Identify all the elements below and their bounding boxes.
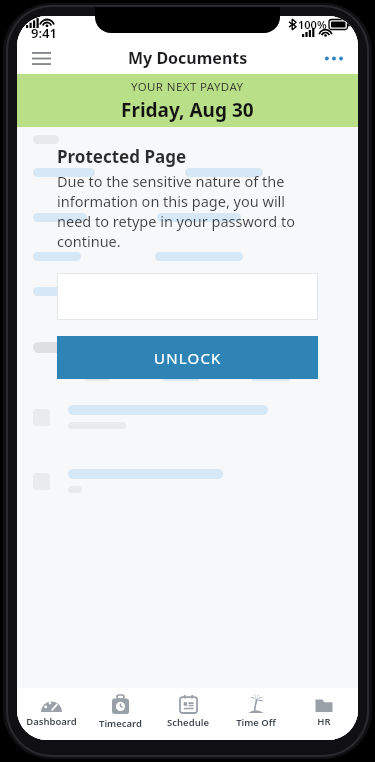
- staticText: Timecard: [99, 717, 142, 730]
- button[interactable]: UNLOCK: [57, 336, 318, 379]
- staticText: Dashboard: [26, 715, 77, 728]
- staticText: Protected Page: [57, 145, 187, 168]
- staticText: HR: [317, 715, 331, 728]
- staticText: Schedule: [167, 716, 209, 729]
- staticText: My Documents: [128, 47, 248, 69]
- staticText: Due to the sensitive nature of the infor…: [57, 171, 318, 251]
- button[interactable]: More options: [316, 42, 352, 74]
- button[interactable]: Menu: [23, 42, 59, 74]
- staticText: Time Off: [236, 716, 276, 729]
- staticText: 100%: [298, 17, 327, 32]
- staticText: Friday, Aug 30: [121, 97, 254, 123]
- button[interactable]: Dashboard: [17, 688, 86, 736]
- button[interactable]: Time Off: [222, 688, 290, 736]
- button[interactable]: Schedule: [154, 688, 222, 736]
- button[interactable]: Password field: [57, 273, 318, 320]
- staticText: YOUR NEXT PAYDAY: [131, 79, 244, 95]
- staticText: UNLOCK: [154, 348, 222, 368]
- staticText: 9:41: [31, 24, 57, 42]
- button[interactable]: HR: [290, 688, 358, 736]
- button[interactable]: Timecard: [86, 688, 154, 736]
